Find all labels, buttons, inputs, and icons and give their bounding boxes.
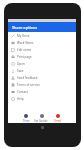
button[interactable]: Terms of service (8, 81, 76, 88)
button[interactable]: Work Notes (8, 39, 76, 46)
staticText: Drive (23, 119, 30, 122)
staticText: Open (17, 62, 25, 66)
button[interactable]: Help (8, 95, 76, 102)
staticText: Help (17, 97, 24, 101)
staticText: Save (17, 69, 24, 73)
button[interactable]: Print page (8, 53, 76, 60)
button[interactable]: Get Google app (34, 112, 50, 122)
button[interactable]: My Drive (8, 32, 76, 39)
button[interactable]: Open (8, 60, 76, 67)
button[interactable]: Share options (8, 22, 76, 32)
staticText: Send feedback (17, 76, 38, 80)
staticText: Work Notes (17, 41, 34, 45)
staticText: Get Google app (34, 119, 50, 122)
button[interactable]: Contact (8, 88, 76, 95)
staticText: Share options (12, 25, 38, 30)
button[interactable]: Drive (18, 112, 34, 122)
button[interactable]: Save (8, 67, 76, 74)
button[interactable]: Gmail (50, 112, 66, 122)
button[interactable]: Send feedback (8, 74, 76, 81)
staticText: Terms of service (17, 83, 40, 87)
staticText: Contact (17, 90, 28, 94)
button[interactable]: Edit name (8, 46, 76, 53)
staticText: My Drive (17, 34, 30, 38)
staticText: Edit name (17, 48, 32, 52)
staticText: Print page (17, 55, 32, 59)
staticText: Gmail (54, 119, 62, 122)
